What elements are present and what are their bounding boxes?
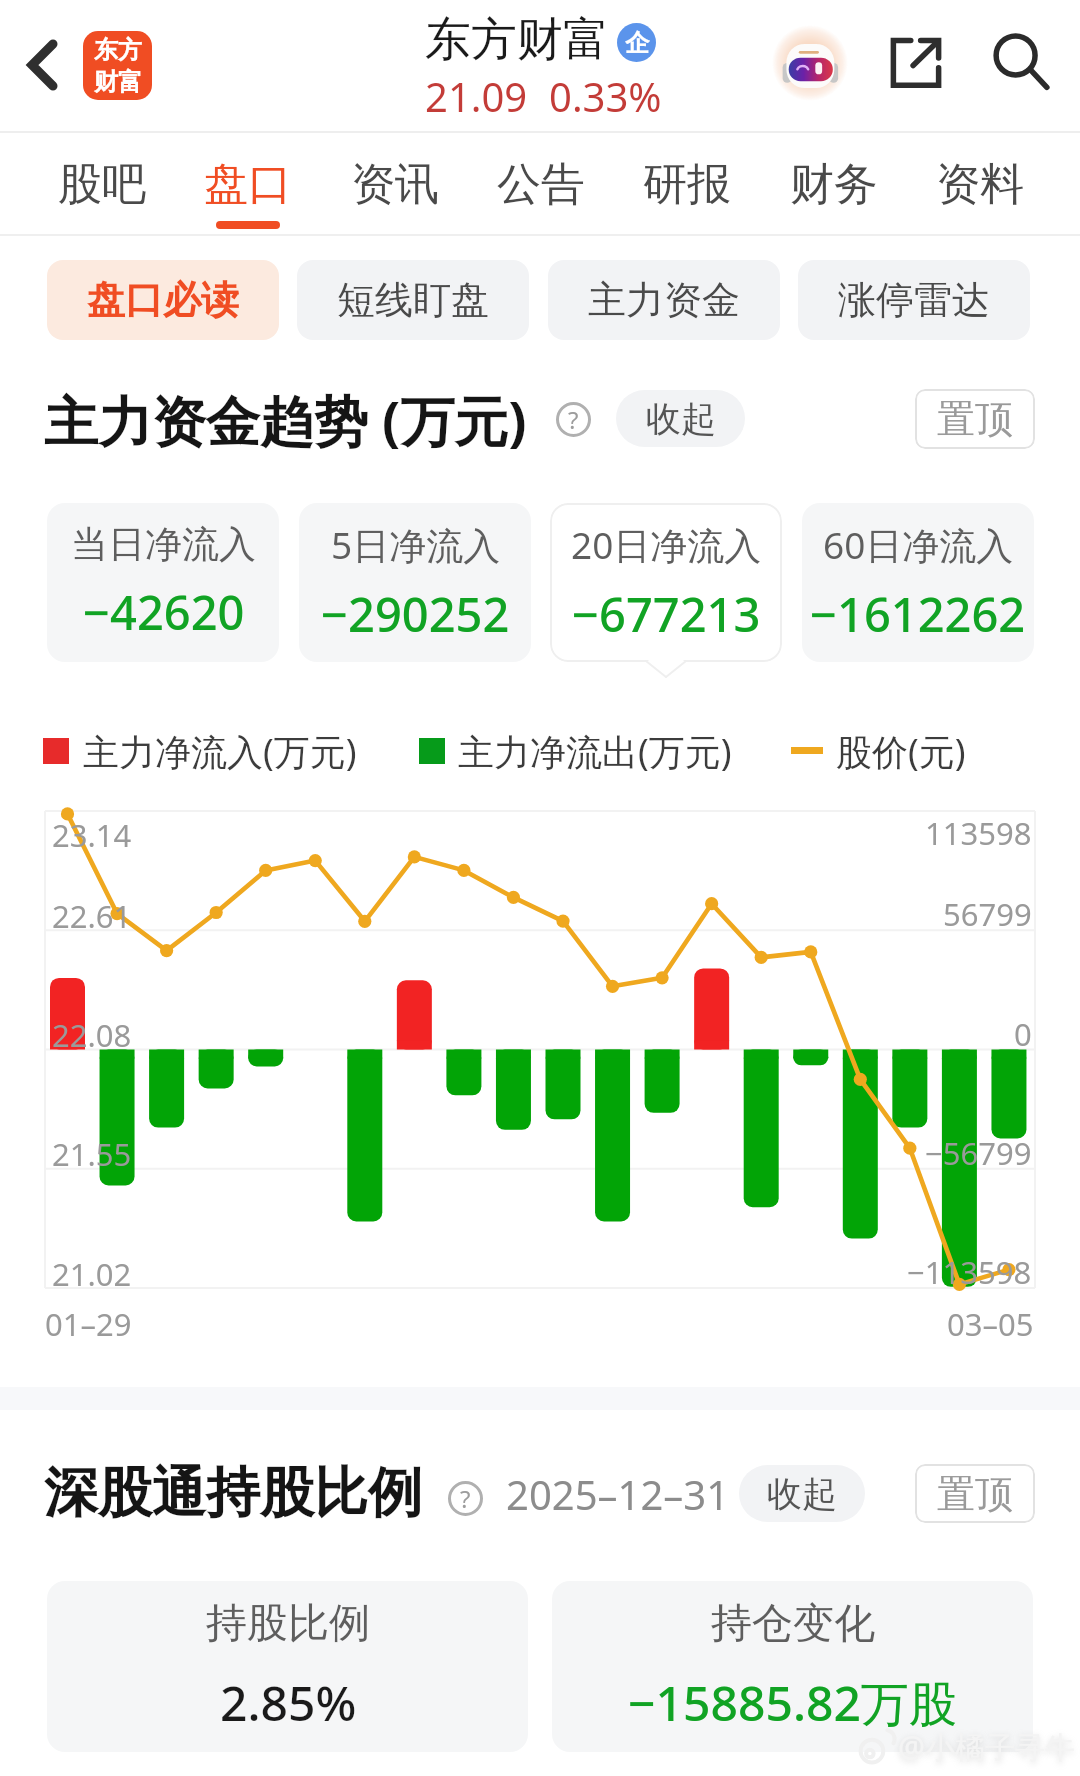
- button[interactable]: Help: [445, 1478, 485, 1518]
- staticText: 资料: [936, 157, 1024, 212]
- button[interactable]: 收起: [739, 1465, 865, 1522]
- staticText: 23.14: [52, 814, 132, 856]
- button[interactable]: 财务: [761, 140, 907, 235]
- staticText: 5日净流入: [331, 519, 501, 570]
- staticText: 收起: [646, 397, 716, 441]
- staticText: 主力净流入(万元): [83, 727, 357, 776]
- staticText: 深股通持股比例: [44, 1459, 422, 1527]
- staticText: 财富: [94, 67, 142, 97]
- staticText: −42620: [83, 580, 245, 644]
- staticText: 01–29: [45, 1303, 132, 1345]
- staticText: 东方: [94, 35, 142, 65]
- staticText: 56799: [943, 893, 1032, 935]
- button[interactable]: 持仓变化: [552, 1581, 1033, 1752]
- staticText: @小橘子寻牛: [898, 1726, 1075, 1767]
- button[interactable]: 主力资金: [548, 260, 780, 340]
- button[interactable]: 资料: [907, 140, 1053, 235]
- staticText: 主力净流出(万元): [458, 727, 732, 776]
- button[interactable]: Share: [876, 22, 956, 102]
- staticText: 60日净流入: [823, 519, 1014, 570]
- button[interactable]: 置顶: [915, 1464, 1035, 1523]
- staticText: 主力资金: [588, 276, 740, 324]
- staticText: 盘口必读: [87, 276, 239, 324]
- button[interactable]: Search: [981, 22, 1061, 102]
- staticText: 涨停雷达: [838, 276, 990, 324]
- staticText: 21.02: [52, 1253, 132, 1295]
- button[interactable]: Back: [8, 30, 78, 100]
- staticText: 股价(元): [836, 727, 966, 776]
- button[interactable]: 收起: [616, 390, 745, 447]
- button[interactable]: 持股比例: [47, 1581, 528, 1752]
- button[interactable]: Help: [553, 399, 593, 439]
- staticText: 21.09: [425, 69, 528, 123]
- button[interactable]: 公告: [468, 140, 614, 235]
- staticText: 0.33%: [549, 69, 662, 123]
- staticText: −1612262: [810, 582, 1026, 646]
- button[interactable]: 5日净流入: [299, 503, 531, 662]
- staticText: 企: [625, 28, 649, 58]
- staticText: 盘口: [204, 157, 292, 212]
- staticText: −113598: [907, 1251, 1032, 1293]
- staticText: 收起: [767, 1472, 837, 1516]
- button[interactable]: AI assistant: [762, 18, 858, 114]
- staticText: 持仓变化: [711, 1598, 875, 1650]
- staticText: 2.85%: [220, 1670, 357, 1735]
- button[interactable]: 资讯: [322, 140, 468, 235]
- button[interactable]: 短线盯盘: [297, 260, 529, 340]
- button[interactable]: 股吧: [29, 140, 175, 235]
- button[interactable]: 60日净流入: [802, 503, 1034, 662]
- button[interactable]: 20日净流入: [550, 503, 782, 662]
- staticText: −677213: [572, 582, 761, 646]
- staticText: −56799: [925, 1132, 1032, 1174]
- button[interactable]: 盘口必读: [47, 260, 279, 340]
- staticText: 21.55: [52, 1133, 132, 1175]
- staticText: 股吧: [58, 157, 146, 212]
- staticText: ?: [568, 403, 579, 436]
- staticText: 2025–12–31: [506, 1467, 730, 1521]
- staticText: 财务: [790, 157, 878, 212]
- staticText: 持股比例: [206, 1598, 370, 1650]
- staticText: 0: [1014, 1013, 1032, 1055]
- button[interactable]: 东方财富: [83, 31, 152, 100]
- staticText: 资讯: [351, 157, 439, 212]
- staticText: 22.08: [52, 1014, 132, 1056]
- staticText: 置顶: [937, 1470, 1013, 1518]
- staticText: 20日净流入: [571, 519, 762, 570]
- button[interactable]: 置顶: [915, 389, 1035, 449]
- staticText: ?: [460, 1482, 471, 1515]
- staticText: −15885.82万股: [628, 1670, 957, 1736]
- staticText: −290252: [321, 582, 510, 646]
- staticText: 当日净流入: [71, 521, 256, 568]
- staticText: 22.61: [52, 895, 132, 937]
- staticText: 置顶: [937, 395, 1013, 443]
- staticText: 03–05: [947, 1303, 1034, 1345]
- staticText: 公告: [497, 157, 585, 212]
- button[interactable]: 涨停雷达: [798, 260, 1030, 340]
- button[interactable]: 研报: [614, 140, 760, 235]
- staticText: 113598: [925, 812, 1032, 854]
- staticText: 东方财富: [425, 11, 609, 69]
- staticText: 短线盯盘: [337, 276, 489, 324]
- staticText: 研报: [643, 157, 731, 212]
- button[interactable]: 盘口: [175, 140, 321, 235]
- staticText: 主力资金趋势 (万元): [44, 383, 527, 457]
- button[interactable]: 当日净流入: [47, 503, 279, 662]
